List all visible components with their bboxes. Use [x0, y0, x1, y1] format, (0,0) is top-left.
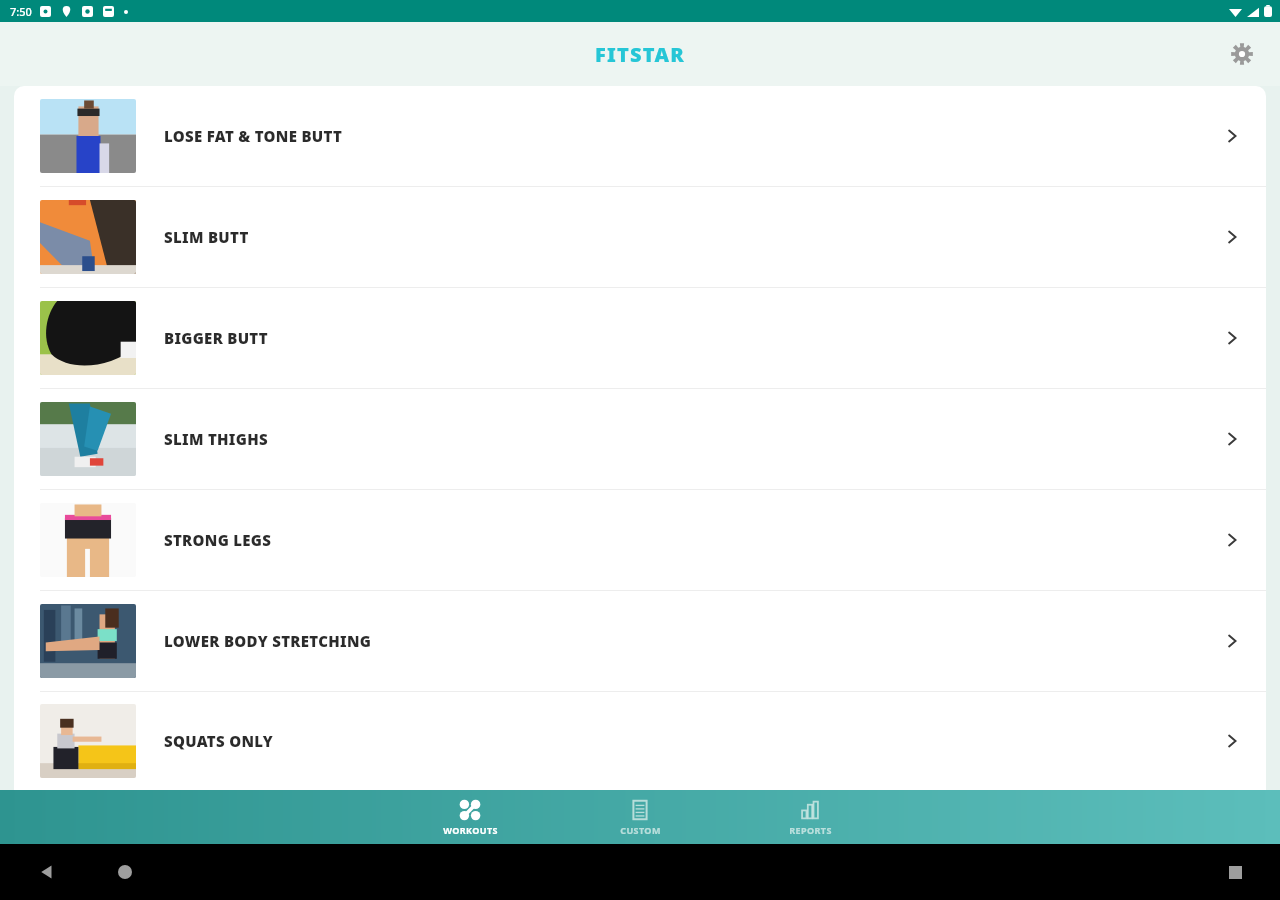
button[interactable]: SLIM THIGHS [14, 389, 1266, 489]
button[interactable]: WORKOUTS [400, 795, 540, 840]
staticText: REPORTS [789, 824, 832, 836]
button[interactable]: LOWER BODY STRETCHING [14, 591, 1266, 691]
staticText: 7:50 [10, 4, 32, 19]
button[interactable]: SLIM BUTT [14, 187, 1266, 287]
staticText: LOWER BODY STRETCHING [164, 631, 372, 651]
staticText: SLIM BUTT [164, 227, 249, 247]
button[interactable]: REPORTS [740, 795, 880, 840]
staticText: SLIM THIGHS [164, 429, 268, 449]
button[interactable]: STRONG LEGS [14, 490, 1266, 590]
button[interactable]: Back [38, 863, 56, 881]
button[interactable]: BIGGER BUTT [14, 288, 1266, 388]
staticText: WORKOUTS [443, 824, 498, 836]
button[interactable]: SQUATS ONLY [14, 692, 1266, 790]
staticText: CUSTOM [620, 824, 661, 836]
staticText: STRONG LEGS [164, 530, 272, 550]
button[interactable]: LOSE FAT & TONE BUTT [14, 86, 1266, 186]
button[interactable]: Home [118, 865, 132, 879]
staticText: LOSE FAT & TONE BUTT [164, 126, 343, 146]
button[interactable]: CUSTOM [570, 795, 710, 840]
button[interactable]: Settings [1222, 34, 1262, 74]
staticText: SQUATS ONLY [164, 731, 274, 751]
staticText: BIGGER BUTT [164, 328, 268, 348]
staticText: FITSTAR [595, 41, 685, 68]
